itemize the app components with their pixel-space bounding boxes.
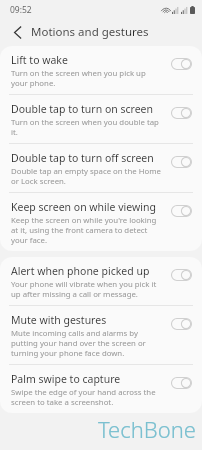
button[interactable]: Palm swipe to capture toggle <box>168 375 194 391</box>
button[interactable]: Lift to wake toggle <box>168 56 194 72</box>
button[interactable]: Alert when phone picked up <box>0 257 202 305</box>
staticText: Alert when phone picked up <box>11 264 150 278</box>
staticText: Turn on the screen when you pick up your… <box>11 68 162 88</box>
staticText: Keep the screen on while you're looking … <box>11 215 162 245</box>
staticText: Double tap to turn off screen <box>11 151 154 165</box>
button[interactable]: Double tap to turn on screen toggle <box>168 105 194 121</box>
staticText: Palm swipe to capture <box>11 372 121 386</box>
staticText: 09:52 <box>10 4 32 16</box>
button[interactable]: Palm swipe to capture <box>0 365 202 413</box>
button[interactable]: Keep screen on while viewing toggle <box>168 203 194 219</box>
button[interactable]: Mute with gestures <box>0 306 202 364</box>
staticText: Lift to wake <box>11 53 68 67</box>
button[interactable]: Alert when phone picked up toggle <box>168 267 194 283</box>
staticText: Mute with gestures <box>11 313 107 327</box>
button[interactable]: Double tap to turn on screen <box>0 95 202 143</box>
button[interactable]: Back <box>7 22 27 42</box>
button[interactable]: Keep screen on while viewing <box>0 193 202 251</box>
staticText: Your phone will vibrate when you pick it… <box>11 279 162 299</box>
staticText: Swipe the edge of your hand across the s… <box>11 387 162 407</box>
staticText: Turn on the screen when you double tap i… <box>11 117 162 137</box>
button[interactable]: Double tap to turn off screen toggle <box>168 154 194 170</box>
staticText: TechBone <box>98 414 196 444</box>
staticText: Motions and gestures <box>31 24 149 40</box>
button[interactable]: Mute with gestures toggle <box>168 316 194 332</box>
button[interactable]: Lift to wake <box>0 46 202 94</box>
staticText: Double tap to turn on screen <box>11 102 154 116</box>
staticText: Keep screen on while viewing <box>11 200 156 214</box>
staticText: Mute incoming calls and alarms by puttin… <box>11 328 162 358</box>
staticText: Double tap an empty space on the Home or… <box>11 166 162 186</box>
button[interactable]: Double tap to turn off screen <box>0 144 202 192</box>
